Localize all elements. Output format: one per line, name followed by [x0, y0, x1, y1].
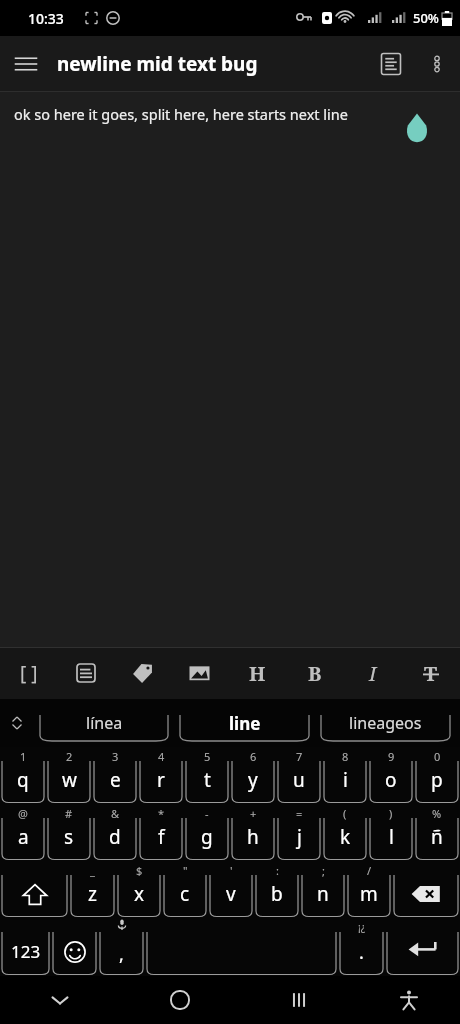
staticText: e — [110, 767, 121, 793]
button[interactable]: Emoji — [52, 918, 97, 976]
button[interactable]: Recent apps — [239, 976, 358, 1024]
staticText: f — [158, 824, 165, 850]
staticText: x — [134, 881, 145, 907]
button[interactable]: Backspace — [393, 861, 459, 918]
button[interactable]: - — [185, 804, 229, 861]
staticText: # — [65, 806, 73, 821]
button[interactable]: línea — [38, 703, 170, 743]
staticText: , — [119, 942, 124, 967]
staticText: 9 — [388, 749, 395, 764]
staticText: 123 — [11, 940, 41, 963]
staticText: c — [180, 881, 190, 907]
staticText: 5 — [204, 749, 211, 764]
button[interactable]: Brackets — [0, 647, 57, 699]
button[interactable]: 6 — [231, 747, 275, 804]
button[interactable]: Accessibility — [358, 976, 460, 1024]
staticText: ) — [389, 806, 393, 821]
staticText: . — [359, 940, 364, 965]
button[interactable]: 4 — [139, 747, 183, 804]
button[interactable]: " — [163, 861, 207, 918]
staticText: l — [389, 824, 394, 850]
button[interactable]: Enter — [386, 918, 459, 976]
button[interactable]: lineageos — [319, 703, 452, 743]
staticText: r — [157, 767, 165, 793]
staticText: ( — [343, 806, 347, 821]
button[interactable]: & — [93, 804, 137, 861]
staticText: s — [64, 824, 74, 850]
button[interactable]: 5 — [185, 747, 229, 804]
button[interactable]: Strikethrough — [402, 647, 460, 699]
button[interactable]: Italic — [344, 647, 402, 699]
button[interactable]: 7 — [277, 747, 321, 804]
staticText: n — [317, 881, 329, 907]
button[interactable]: ; — [301, 861, 345, 918]
button[interactable]: Comma and voice input — [99, 918, 144, 976]
button[interactable]: ' — [209, 861, 253, 918]
button[interactable]: Expand suggestions — [0, 699, 34, 747]
button[interactable]: ¡¿ — [339, 918, 384, 976]
staticText: $ — [136, 863, 143, 878]
button[interactable]: Image — [171, 647, 228, 699]
button[interactable]: More options — [414, 41, 460, 87]
button[interactable]: 1 — [1, 747, 45, 804]
staticText: " — [183, 863, 188, 878]
button[interactable]: Shift — [1, 861, 68, 918]
staticText: u — [293, 767, 305, 793]
staticText: j — [297, 824, 302, 850]
button[interactable]: Space — [146, 918, 337, 976]
staticText: ; — [322, 863, 325, 878]
staticText: I — [369, 660, 377, 687]
button[interactable]: Tag — [114, 647, 171, 699]
staticText: 3 — [112, 749, 119, 764]
staticText: z — [88, 881, 97, 907]
button[interactable]: * — [139, 804, 183, 861]
staticText: y — [248, 767, 258, 793]
staticText: línea — [86, 712, 123, 734]
button[interactable]: Navigation drawer — [4, 42, 48, 86]
button[interactable]: $ — [117, 861, 161, 918]
button[interactable]: : — [255, 861, 299, 918]
button[interactable]: _ — [70, 861, 115, 918]
button[interactable]: Note — [57, 647, 114, 699]
button[interactable]: / — [347, 861, 391, 918]
staticText: ok so here it goes, split here, here sta… — [14, 104, 348, 124]
staticText: o — [385, 767, 397, 793]
button[interactable]: @ — [1, 804, 45, 861]
button[interactable]: Bold — [286, 647, 344, 699]
button[interactable]: = — [277, 804, 321, 861]
button[interactable]: Preview — [368, 41, 414, 87]
button[interactable]: % — [415, 804, 459, 861]
button[interactable]: 2 — [47, 747, 91, 804]
staticText: 0 — [434, 749, 441, 764]
button[interactable]: ) — [369, 804, 413, 861]
button[interactable]: Heading — [228, 647, 286, 699]
staticText: - — [205, 806, 209, 821]
staticText: d — [109, 824, 121, 850]
button[interactable]: # — [47, 804, 91, 861]
staticText: b — [271, 881, 283, 907]
button[interactable]: Home — [120, 976, 239, 1024]
staticText: @ — [18, 806, 28, 821]
staticText: ñ — [431, 824, 443, 850]
staticText: h — [247, 824, 259, 850]
staticText: 2 — [66, 749, 73, 764]
button[interactable]: 8 — [323, 747, 367, 804]
staticText: m — [360, 881, 378, 907]
button[interactable]: 9 — [369, 747, 413, 804]
staticText: B — [308, 660, 322, 687]
button[interactable]: line — [178, 703, 311, 743]
staticText: 4 — [158, 749, 165, 764]
button[interactable]: 123 — [1, 918, 50, 976]
button[interactable]: ( — [323, 804, 367, 861]
button[interactable]: 3 — [93, 747, 137, 804]
button[interactable]: 0 — [415, 747, 459, 804]
staticText: : — [276, 863, 279, 878]
staticText: [ ] — [20, 660, 38, 686]
staticText: T — [424, 660, 438, 687]
button[interactable]: + — [231, 804, 275, 861]
staticText: p — [431, 767, 443, 793]
staticText: * — [158, 806, 165, 821]
button[interactable]: Hide keyboard — [0, 976, 120, 1024]
staticText: q — [17, 767, 29, 793]
staticText: 10:33 — [28, 9, 64, 28]
